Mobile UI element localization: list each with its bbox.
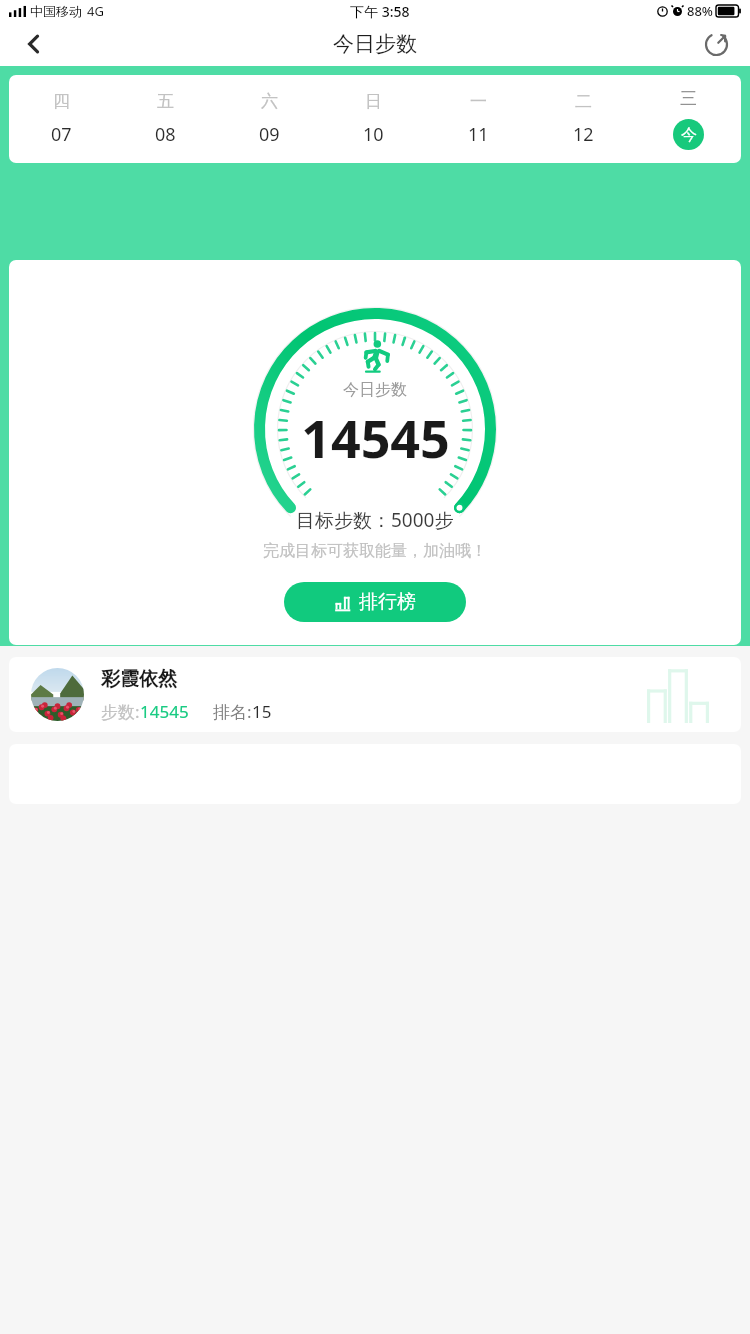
staticText: 日 (365, 91, 382, 112)
button[interactable]: 日 (321, 75, 426, 163)
staticText: 四 (53, 91, 70, 112)
staticText: 88% (687, 2, 713, 20)
staticText: 二 (575, 91, 592, 112)
staticText: 步数: (101, 700, 140, 723)
staticText: 07 (51, 122, 72, 147)
staticText: 今日步数 (343, 380, 407, 400)
button[interactable]: 排行榜 (284, 582, 466, 622)
staticText: 10 (363, 122, 384, 147)
button[interactable]: 彩霞依然 (9, 657, 741, 732)
staticText: 09 (259, 122, 280, 147)
staticText: 一 (470, 91, 487, 112)
staticText: 今日步数 (333, 31, 417, 57)
staticText: 彩霞依然 (101, 667, 177, 691)
staticText: 排名: (213, 700, 252, 723)
staticText: 排行榜 (359, 590, 416, 614)
staticText: 12 (573, 122, 594, 147)
button[interactable]: Back (10, 22, 58, 66)
staticText: 下午 3:58 (350, 2, 410, 21)
staticText: 14545 (301, 402, 450, 473)
button[interactable]: 一 (426, 75, 531, 163)
staticText: 五 (157, 91, 174, 112)
staticText: 08 (155, 122, 176, 147)
staticText: 完成目标可获取能量，加油哦！ (263, 541, 487, 561)
staticText: 14545 (140, 700, 189, 723)
staticText: 11 (468, 122, 489, 147)
staticText: 今 (681, 125, 697, 145)
button[interactable]: Refresh (692, 22, 740, 66)
button[interactable]: 三 (636, 75, 741, 163)
staticText: 15 (252, 700, 272, 723)
button[interactable]: 四 (9, 75, 113, 163)
button[interactable]: 六 (217, 75, 321, 163)
staticText: 六 (261, 91, 278, 112)
staticText: 4G (87, 2, 104, 20)
button[interactable]: 五 (113, 75, 217, 163)
staticText: 目标步数：5000步 (296, 507, 454, 533)
staticText: 三 (680, 88, 697, 109)
button[interactable]: 二 (531, 75, 636, 163)
staticText: 中国移动 (30, 3, 82, 19)
